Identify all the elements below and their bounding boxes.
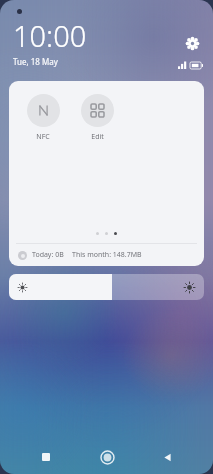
staticText: Tue, 18 May: [13, 56, 58, 67]
button[interactable]: Home: [93, 443, 121, 471]
staticText: Today: 0B: [32, 250, 64, 260]
staticText: Edit: [91, 132, 104, 142]
button[interactable]: Edit: [74, 92, 120, 144]
staticText: NFC: [36, 132, 50, 142]
button[interactable]: Recents: [32, 443, 60, 471]
button[interactable]: Brightness: [9, 274, 204, 300]
button[interactable]: Settings: [181, 32, 203, 54]
staticText: This month: 148.7MB: [72, 250, 142, 260]
staticText: 10:00: [13, 16, 87, 55]
button[interactable]: NFC: [20, 92, 66, 144]
button[interactable]: Back: [153, 443, 181, 471]
button[interactable]: Today: 0B: [9, 244, 204, 266]
